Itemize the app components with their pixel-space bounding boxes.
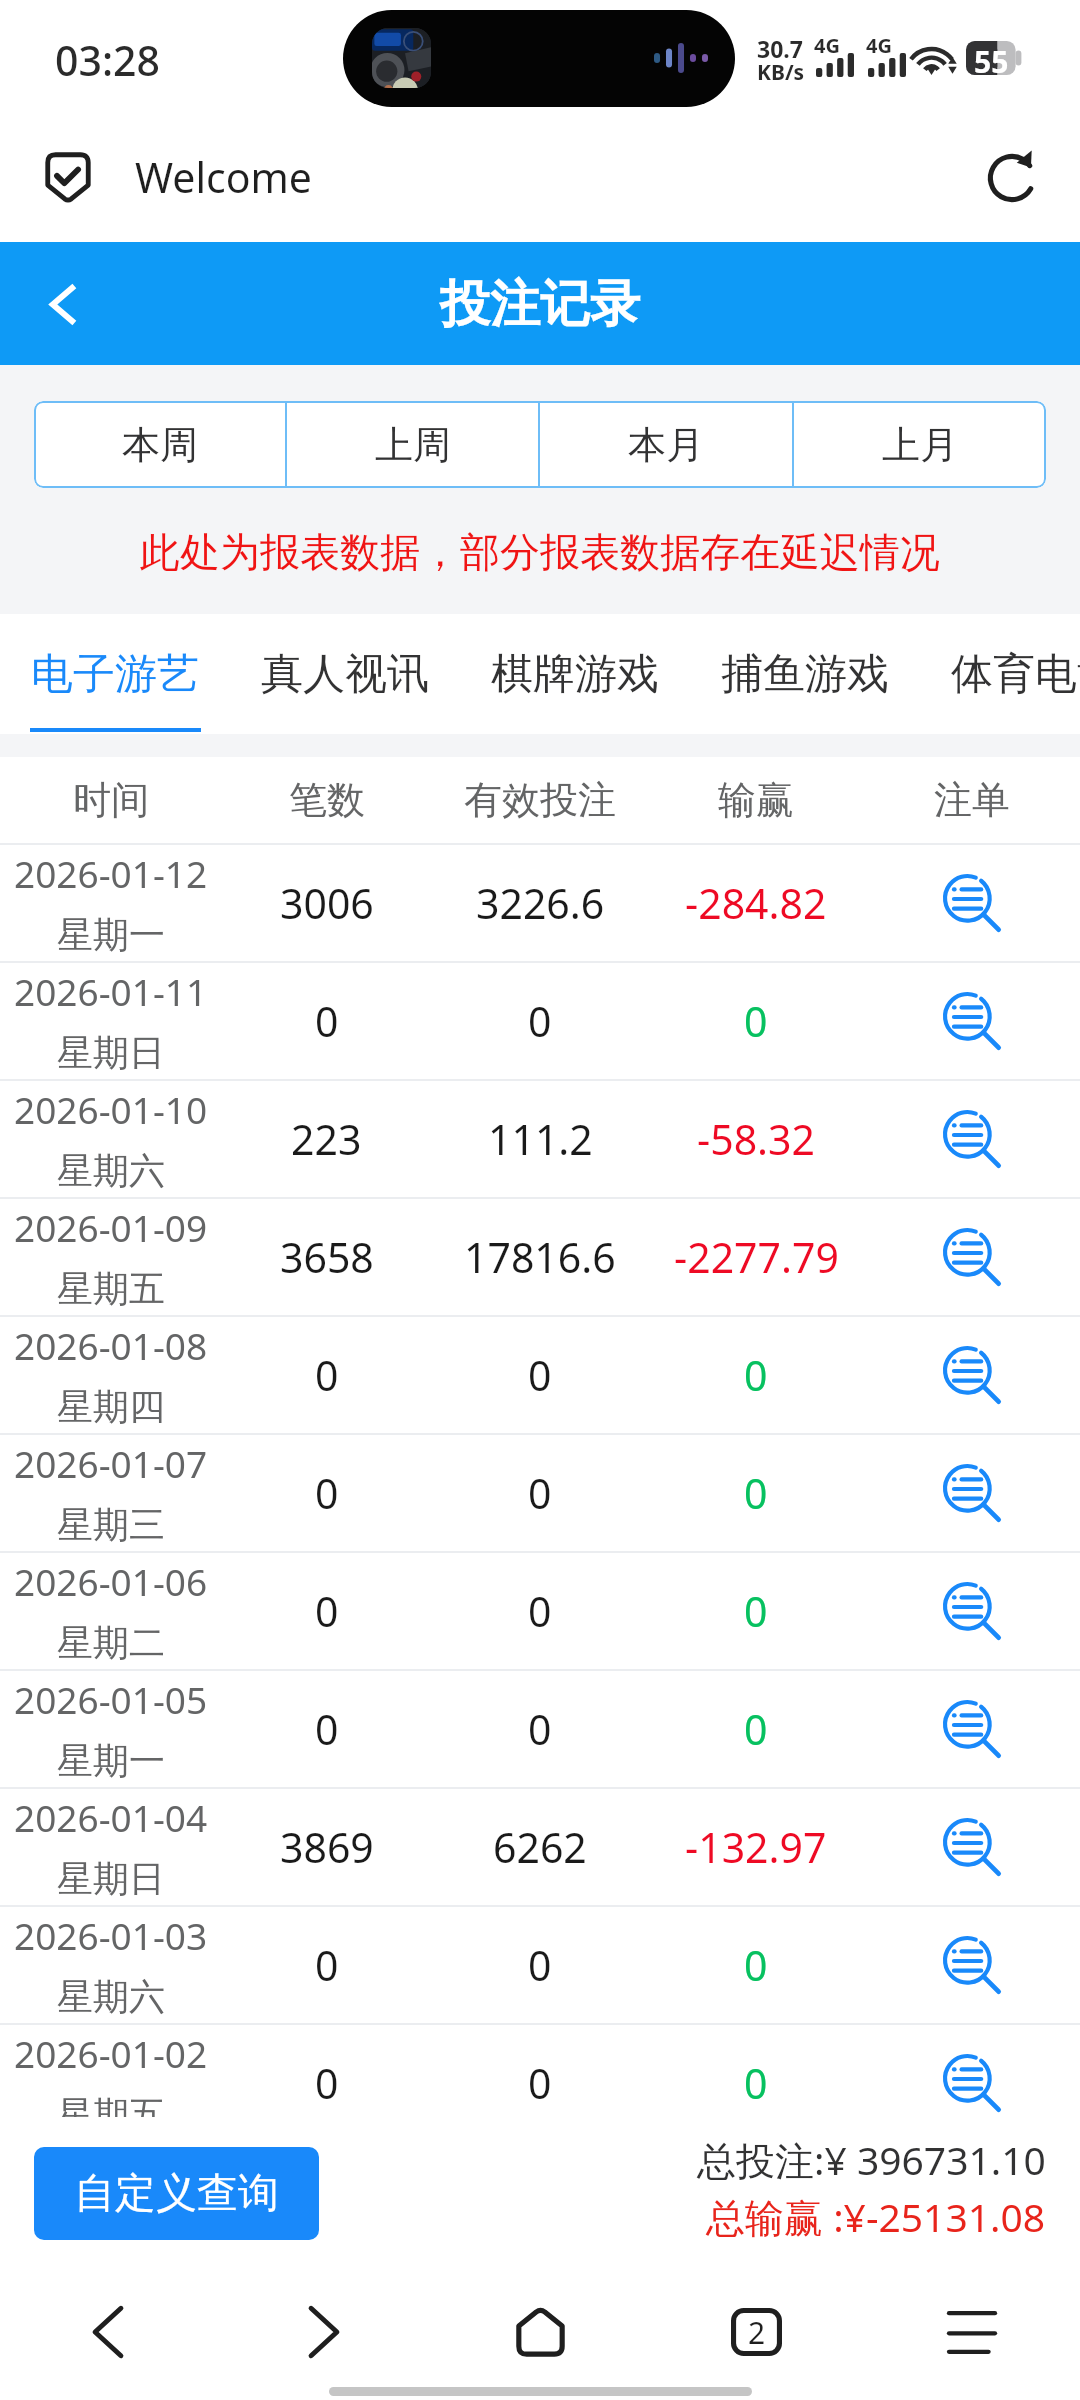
- staticText: 注单: [934, 776, 1010, 824]
- staticText: 有效投注: [464, 776, 616, 824]
- staticText: 笔数: [289, 776, 365, 824]
- staticText: 55: [974, 41, 1009, 75]
- button[interactable]: 本周: [34, 401, 285, 488]
- staticText: 2026-01-05: [14, 1674, 208, 1724]
- staticText: 2026-01-12: [14, 848, 208, 898]
- staticText: 4G: [866, 32, 892, 59]
- button[interactable]: 棋牌游戏: [460, 614, 690, 734]
- staticText: 星期五: [57, 1266, 165, 1311]
- button[interactable]: 2026-01-08: [0, 1317, 1080, 1433]
- staticText: 2026-01-10: [14, 1084, 208, 1134]
- button[interactable]: View bet details: [932, 981, 1012, 1061]
- staticText: 0: [528, 1347, 552, 1403]
- staticText: 星期日: [57, 1856, 165, 1901]
- staticText: 4G: [814, 32, 840, 59]
- staticText: 总输赢 :¥-25131.08: [706, 2190, 1046, 2243]
- staticText: 2026-01-08: [14, 1320, 208, 1370]
- button[interactable]: 自定义查询: [34, 2147, 319, 2240]
- staticText: 星期日: [57, 1030, 165, 1075]
- staticText: 0: [744, 1465, 768, 1521]
- button[interactable]: 捕鱼游戏: [690, 614, 920, 734]
- staticText: 0: [528, 1937, 552, 1993]
- staticText: 星期三: [57, 1502, 165, 1547]
- staticText: 此处为报表数据，部分报表数据存在延迟情况: [140, 527, 940, 577]
- staticText: 0: [315, 993, 339, 1049]
- staticText: 111.2: [488, 1111, 593, 1167]
- staticText: 星期五: [57, 2092, 165, 2117]
- button[interactable]: 2026-01-02: [0, 2025, 1080, 2117]
- button[interactable]: 2026-01-12: [0, 845, 1080, 961]
- button[interactable]: View bet details: [932, 1925, 1012, 2005]
- button[interactable]: Back: [0, 2277, 216, 2387]
- button[interactable]: 2026-01-04: [0, 1789, 1080, 1905]
- button[interactable]: 2026-01-11: [0, 963, 1080, 1079]
- button[interactable]: Tabs, 2 open: [648, 2277, 864, 2387]
- button[interactable]: 2026-01-05: [0, 1671, 1080, 1787]
- staticText: -132.97: [685, 1819, 827, 1875]
- staticText: 棋牌游戏: [491, 648, 659, 701]
- staticText: 捕鱼游戏: [721, 648, 889, 701]
- button[interactable]: View bet details: [932, 1689, 1012, 1769]
- staticText: 0: [315, 1583, 339, 1639]
- staticText: 星期一: [57, 1738, 165, 1783]
- staticText: 0: [744, 1583, 768, 1639]
- staticText: 6262: [493, 1819, 587, 1875]
- staticText: 03:28: [55, 32, 160, 88]
- staticText: 0: [744, 1937, 768, 1993]
- staticText: KB/s: [757, 58, 805, 87]
- staticText: 上月: [882, 421, 958, 469]
- button[interactable]: View bet details: [932, 1807, 1012, 1887]
- staticText: 17816.6: [464, 1229, 616, 1285]
- staticText: 223: [291, 1111, 362, 1167]
- staticText: 星期四: [57, 1384, 165, 1429]
- staticText: 0: [528, 1465, 552, 1521]
- staticText: 本月: [628, 421, 704, 469]
- staticText: 0: [528, 1701, 552, 1757]
- button[interactable]: 2026-01-09: [0, 1199, 1080, 1315]
- staticText: -58.32: [697, 1111, 815, 1167]
- button[interactable]: 2026-01-03: [0, 1907, 1080, 2023]
- button[interactable]: View bet details: [932, 1217, 1012, 1297]
- button[interactable]: 2026-01-07: [0, 1435, 1080, 1551]
- staticText: 本周: [122, 421, 198, 469]
- staticText: Welcome: [135, 149, 312, 205]
- staticText: 0: [528, 2055, 552, 2111]
- button[interactable]: 2026-01-10: [0, 1081, 1080, 1197]
- button[interactable]: 体育电竞: [920, 614, 1080, 734]
- staticText: 体育电竞: [951, 648, 1080, 701]
- button[interactable]: View bet details: [932, 1571, 1012, 1651]
- staticText: 2026-01-09: [14, 1202, 208, 1252]
- button[interactable]: 电子游艺: [0, 614, 230, 734]
- staticText: 星期六: [57, 1974, 165, 2019]
- button[interactable]: 2026-01-06: [0, 1553, 1080, 1669]
- staticText: 0: [315, 1465, 339, 1521]
- staticText: 自定义查询: [74, 2168, 279, 2220]
- button[interactable]: View bet details: [932, 1453, 1012, 1533]
- staticText: 上周: [375, 421, 451, 469]
- staticText: 2026-01-04: [14, 1792, 208, 1842]
- button[interactable]: Forward: [216, 2277, 432, 2387]
- staticText: 0: [528, 1583, 552, 1639]
- button[interactable]: View bet details: [932, 1335, 1012, 1415]
- staticText: 3226.6: [476, 875, 605, 931]
- button[interactable]: Back: [20, 262, 104, 346]
- staticText: 30.7: [757, 33, 803, 64]
- button[interactable]: Home: [432, 2277, 648, 2387]
- button[interactable]: 本月: [540, 401, 792, 488]
- button[interactable]: View bet details: [932, 2043, 1012, 2117]
- button[interactable]: View bet details: [932, 1099, 1012, 1179]
- staticText: 时间: [73, 776, 149, 824]
- staticText: 0: [744, 2055, 768, 2111]
- staticText: 0: [744, 1701, 768, 1757]
- button[interactable]: 上月: [794, 401, 1046, 488]
- button[interactable]: 真人视讯: [230, 614, 460, 734]
- staticText: 星期一: [57, 912, 165, 957]
- button[interactable]: View bet details: [932, 863, 1012, 943]
- staticText: 星期二: [57, 1620, 165, 1665]
- staticText: 2026-01-11: [14, 966, 208, 1016]
- button[interactable]: 上周: [287, 401, 538, 488]
- staticText: 0: [315, 1701, 339, 1757]
- staticText: 电子游艺: [31, 648, 199, 701]
- button[interactable]: Refresh: [974, 143, 1050, 219]
- button[interactable]: Menu: [864, 2277, 1080, 2387]
